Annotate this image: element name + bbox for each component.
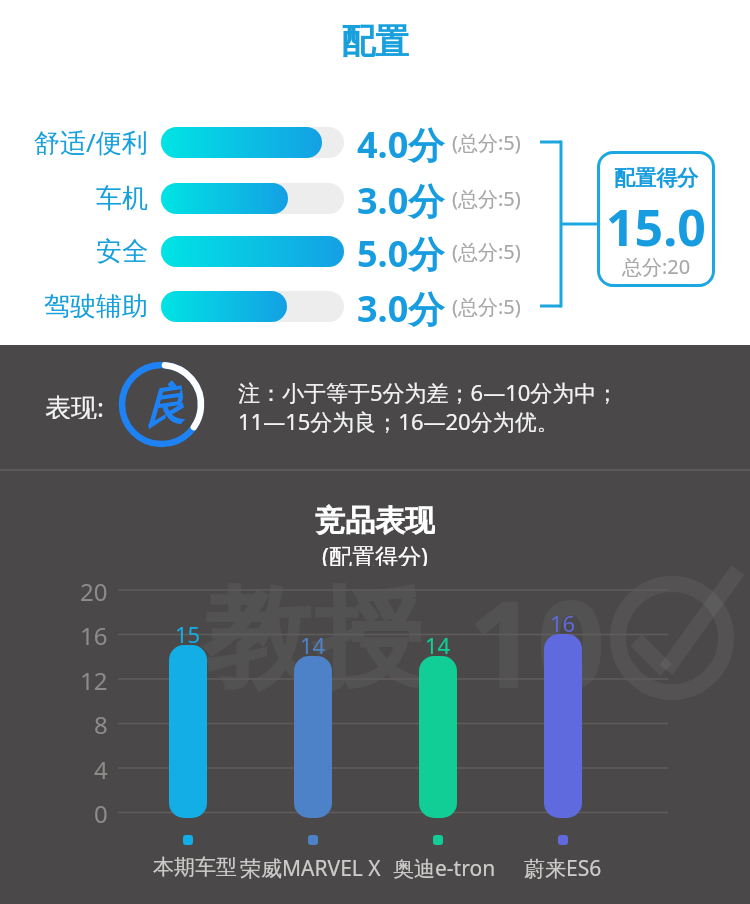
staticText: 注：小于等于5分为差；6—10分为中；: [238, 377, 619, 407]
staticText: 表现:: [45, 389, 104, 419]
staticText: 奥迪e-tron: [393, 854, 496, 880]
staticText: 3.0分: [357, 284, 445, 328]
staticText: 安全: [96, 235, 148, 268]
staticText: 舒适/便利: [34, 124, 148, 160]
staticText: 0: [94, 797, 108, 827]
staticText: 14: [300, 630, 326, 654]
staticText: 3.0分: [357, 176, 445, 220]
staticText: 11—15分为良；16—20分为优。: [238, 406, 559, 436]
staticText: 总分:20: [622, 253, 691, 280]
staticText: 蔚来ES6: [524, 854, 602, 880]
staticText: 驾驶辅助: [44, 290, 148, 323]
button[interactable]: [169, 645, 207, 818]
staticText: (总分:5): [452, 238, 521, 265]
staticText: 10: [468, 560, 606, 723]
staticText: 良: [137, 376, 187, 434]
staticText: (配置得分): [322, 540, 428, 566]
staticText: 竞品表现: [315, 502, 435, 536]
staticText: 本期车型: [153, 854, 237, 880]
staticText: 15.0: [606, 193, 706, 249]
staticText: 车机: [96, 182, 148, 215]
staticText: 5.0分: [357, 229, 445, 273]
staticText: 教授: [203, 570, 423, 709]
staticText: 16: [80, 619, 108, 649]
staticText: 14: [425, 630, 451, 654]
staticText: 16: [550, 608, 576, 632]
staticText: 15: [175, 619, 201, 643]
staticText: 4: [94, 753, 108, 783]
staticText: 配置得分: [614, 165, 698, 191]
button[interactable]: [419, 656, 457, 818]
staticText: 8: [94, 708, 108, 738]
staticText: 20: [80, 575, 108, 605]
staticText: 12: [80, 664, 108, 694]
button[interactable]: [294, 656, 332, 818]
staticText: (总分:5): [452, 293, 521, 320]
staticText: 配置: [341, 20, 409, 62]
staticText: 荣威MARVEL X: [240, 854, 381, 880]
staticText: 4.0分: [357, 120, 445, 164]
staticText: (总分:5): [452, 129, 521, 156]
staticText: (总分:5): [452, 185, 521, 212]
button[interactable]: [597, 151, 715, 287]
button[interactable]: [544, 634, 582, 818]
